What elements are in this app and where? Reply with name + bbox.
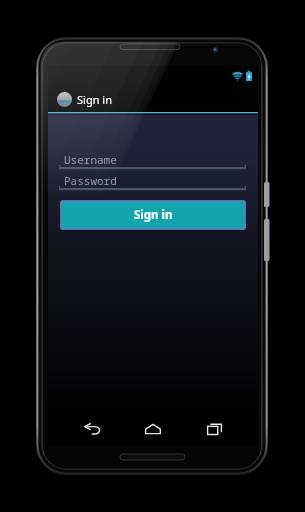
staticText: Username [64,152,117,167]
button[interactable]: Recent apps [197,413,231,445]
button[interactable]: Sign in [57,92,112,107]
staticText: Sign in [77,92,112,107]
button[interactable]: Home [136,413,170,445]
button[interactable]: Back [75,413,109,445]
staticText: Password [64,173,117,188]
button[interactable]: Sign in [60,200,246,230]
button[interactable]: Username [59,152,246,171]
button[interactable]: Password [59,173,246,192]
staticText: Sign in [134,207,173,223]
